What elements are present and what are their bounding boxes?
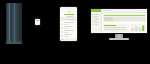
button[interactable]: Tab 3: [69, 38, 73, 41]
button[interactable]: [92, 15, 100, 17]
button[interactable]: [61, 34, 76, 37]
button[interactable]: [130, 24, 146, 32]
button[interactable]: Desktop dashboard: [90, 8, 148, 34]
button[interactable]: [61, 30, 76, 33]
button[interactable]: Phone app: [59, 6, 78, 42]
button[interactable]: [103, 14, 146, 22]
button[interactable]: [103, 24, 129, 32]
button[interactable]: [61, 22, 76, 25]
button[interactable]: [92, 19, 100, 21]
button[interactable]: Tab 1: [60, 38, 65, 41]
button[interactable]: [92, 17, 100, 19]
button[interactable]: Watch app: [34, 18, 41, 26]
button[interactable]: Dark theme device: [6, 3, 22, 44]
button[interactable]: Tab 4: [73, 38, 77, 41]
button[interactable]: [92, 23, 100, 25]
button[interactable]: [92, 13, 100, 15]
button[interactable]: [60, 9, 77, 17]
button[interactable]: [92, 21, 100, 23]
button[interactable]: [61, 26, 76, 29]
button[interactable]: Tab 2: [65, 38, 69, 41]
